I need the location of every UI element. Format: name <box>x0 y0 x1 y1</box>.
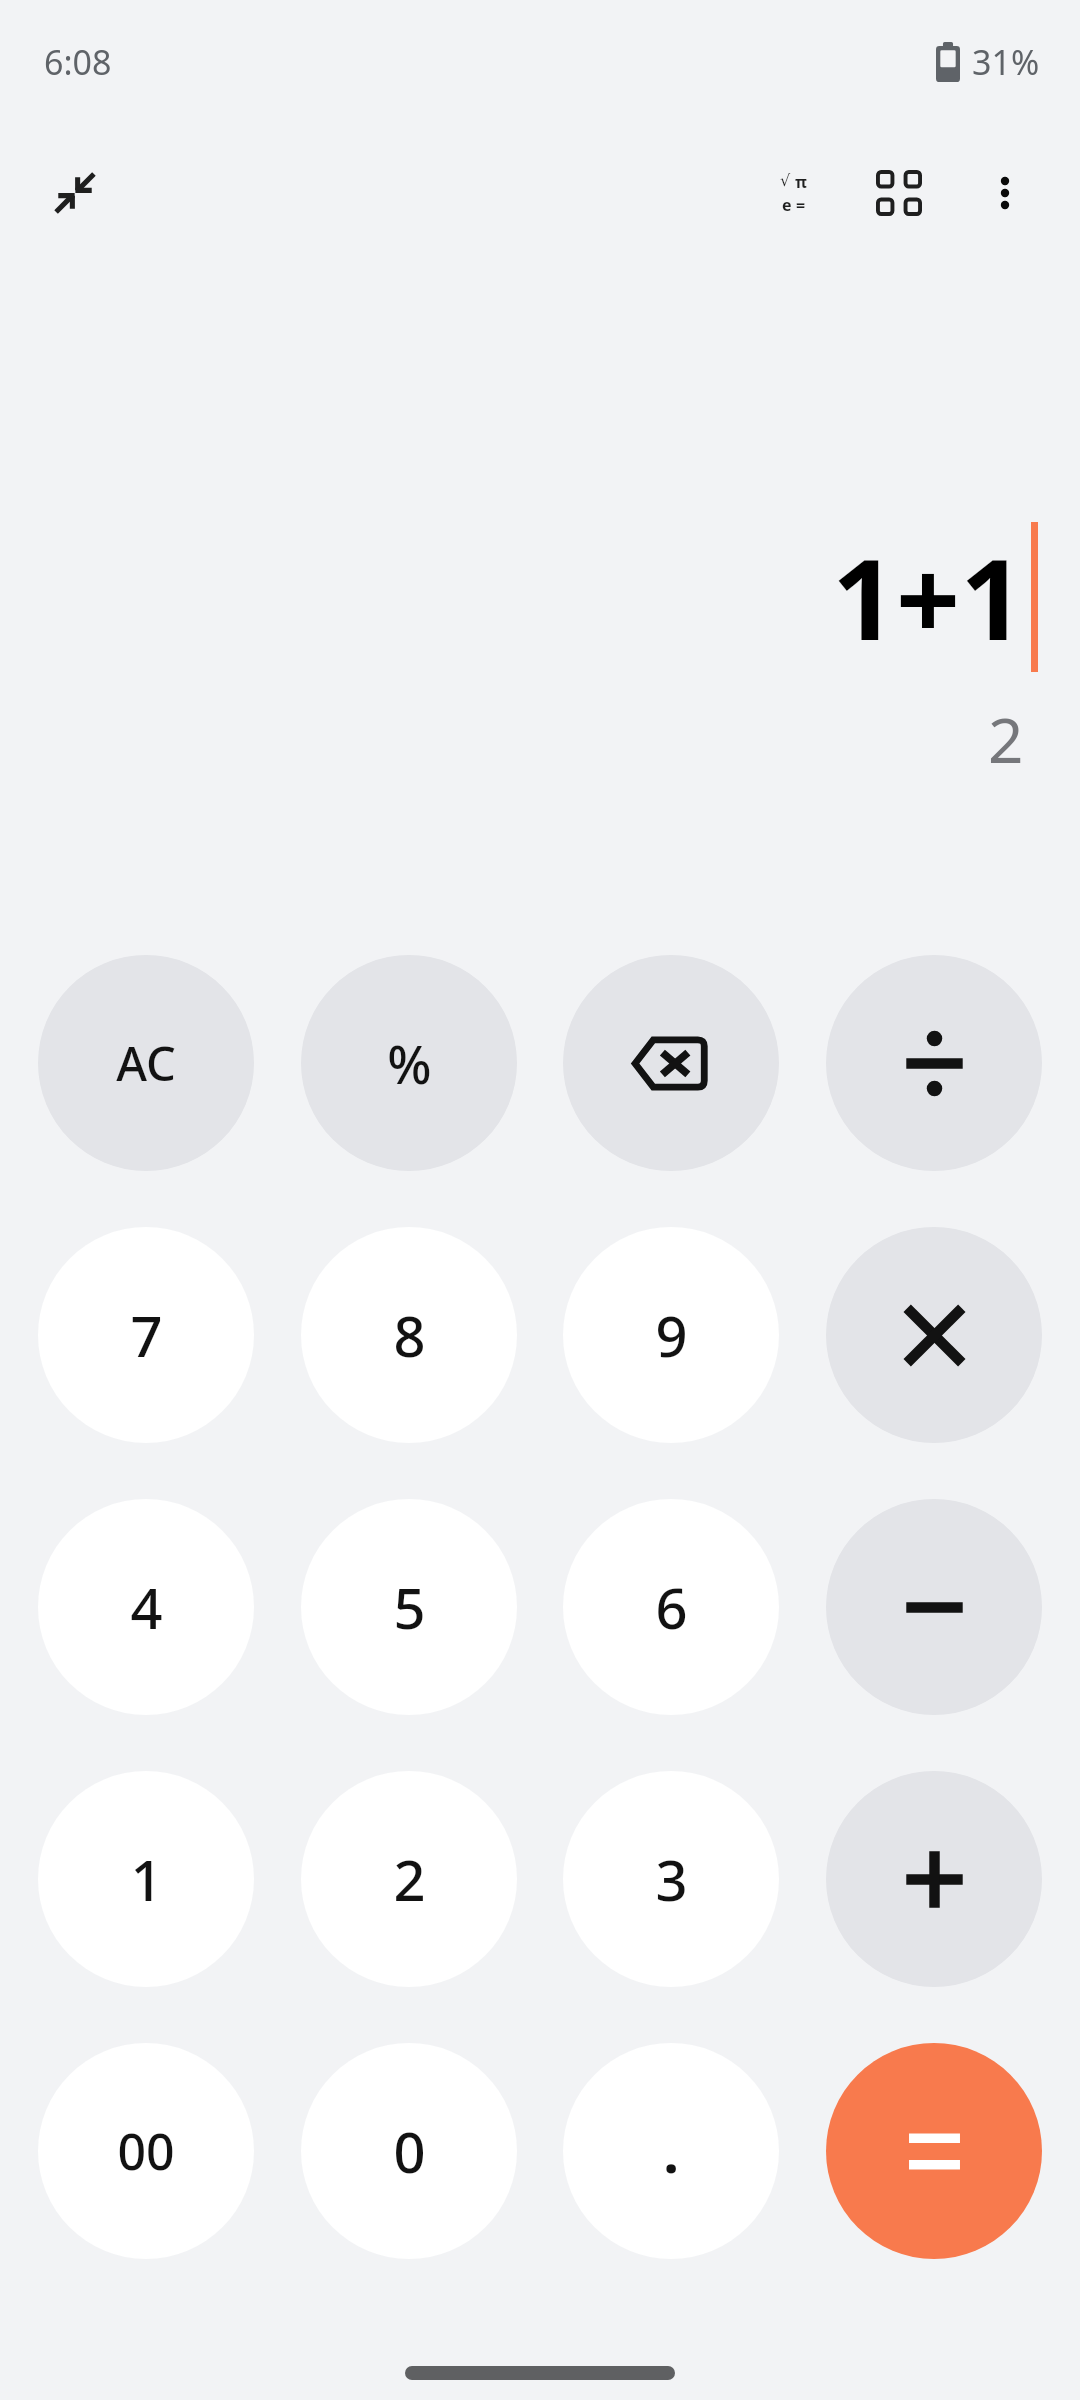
button[interactable]: 5 <box>301 1499 517 1715</box>
button[interactable]: Divide <box>826 955 1042 1171</box>
staticText: 7 <box>130 1297 163 1373</box>
staticText: = <box>796 194 806 216</box>
staticText: 8 <box>393 1297 426 1373</box>
button[interactable]: Apps <box>860 154 938 232</box>
button[interactable]: 1 <box>38 1771 254 1987</box>
staticText: 1+1 <box>832 520 1025 673</box>
button[interactable]: 4 <box>38 1499 254 1715</box>
staticText: 31% <box>972 39 1040 85</box>
staticText: 00 <box>117 2117 175 2185</box>
staticText: 3 <box>655 1841 688 1917</box>
staticText: 4 <box>130 1569 163 1645</box>
button[interactable]: 6 <box>563 1499 779 1715</box>
staticText: 1 <box>130 1841 163 1917</box>
staticText: 6 <box>655 1569 688 1645</box>
button[interactable]: Subtract <box>826 1499 1042 1715</box>
staticText: π <box>795 171 807 193</box>
button[interactable]: More options <box>966 154 1044 232</box>
button[interactable]: . <box>563 2043 779 2259</box>
button[interactable]: Scientific functions <box>754 154 832 232</box>
staticText: AC <box>116 1031 176 1095</box>
button[interactable]: Add <box>826 1771 1042 1987</box>
staticText: 6:08 <box>44 39 112 85</box>
button[interactable]: 3 <box>563 1771 779 1987</box>
staticText: e <box>782 194 792 216</box>
button[interactable]: 9 <box>563 1227 779 1443</box>
staticText: 2 <box>393 1841 426 1917</box>
button[interactable]: Multiply <box>826 1227 1042 1443</box>
staticText: 9 <box>655 1297 688 1373</box>
button[interactable]: Collapse <box>36 154 114 232</box>
button[interactable]: Equals <box>826 2043 1042 2259</box>
staticText: % <box>387 1028 432 1099</box>
button[interactable]: 2 <box>301 1771 517 1987</box>
staticText: . <box>663 2113 679 2189</box>
button[interactable]: AC <box>38 955 254 1171</box>
staticText: 5 <box>393 1569 426 1645</box>
staticText: √ <box>780 171 791 190</box>
button[interactable]: % <box>301 955 517 1171</box>
staticText: 2 <box>988 697 1024 781</box>
button[interactable]: 8 <box>301 1227 517 1443</box>
button[interactable]: 7 <box>38 1227 254 1443</box>
staticText: 0 <box>393 2113 426 2189</box>
button[interactable]: Backspace <box>563 955 779 1171</box>
button[interactable]: 00 <box>38 2043 254 2259</box>
button[interactable]: 0 <box>301 2043 517 2259</box>
